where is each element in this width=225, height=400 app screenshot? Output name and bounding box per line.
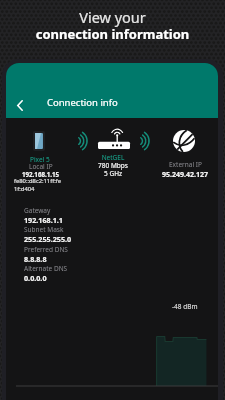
staticText: 255.255.255.0 — [24, 234, 72, 244]
button[interactable]: Back — [6, 63, 218, 118]
staticText: Pixel 5 — [30, 155, 50, 164]
staticText: connection information — [0, 25, 225, 43]
staticText: 0.0.0.0 — [24, 273, 47, 283]
staticText: View your — [0, 7, 225, 27]
button[interactable]: Gateway — [24, 206, 114, 225]
staticText: Alternate DNS — [24, 264, 68, 273]
staticText: 5 GHz — [83, 169, 143, 178]
staticText: Connection info — [47, 96, 118, 109]
button[interactable]: Back — [11, 96, 29, 114]
staticText: 1f:d404 — [14, 185, 35, 193]
staticText: Subnet Mask — [24, 225, 64, 234]
staticText: 95.249.42.127 — [162, 170, 208, 180]
button[interactable]: Alternate DNS — [24, 264, 114, 283]
staticText: 192.168.1.1 — [24, 215, 63, 225]
staticText: Gateway — [24, 206, 51, 215]
staticText: NetGEL — [83, 153, 143, 162]
staticText: fe80::d8c2:11ff:fe — [14, 177, 61, 185]
staticText: Preferred DNS — [24, 245, 68, 254]
staticText: Local IP — [29, 162, 53, 171]
staticText: 780 Mbps — [83, 161, 143, 170]
button[interactable]: Preferred DNS — [24, 245, 114, 264]
button[interactable]: Subnet Mask — [24, 225, 114, 244]
staticText: 192.168.1.15 — [22, 170, 60, 178]
staticText: 8.8.8.8 — [24, 254, 47, 264]
staticText: External IP — [169, 160, 202, 169]
staticText: -48 dBm — [172, 302, 198, 311]
